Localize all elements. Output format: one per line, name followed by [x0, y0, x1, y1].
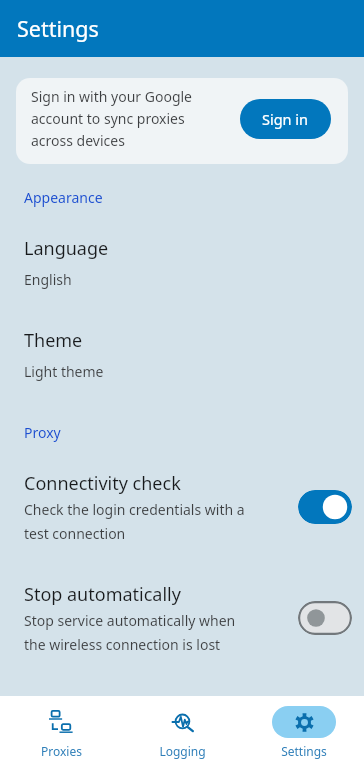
staticText: Stop automatically — [24, 582, 181, 607]
staticText: Settings — [17, 14, 99, 43]
staticText: Appearance — [24, 188, 103, 207]
staticText: Proxy — [24, 423, 61, 442]
button[interactable]: Stop automatically — [0, 563, 364, 674]
staticText: Light theme — [24, 362, 104, 381]
staticText: Sign in — [262, 109, 309, 129]
staticText: Sign in with your Google account to sync… — [31, 87, 199, 150]
button[interactable]: Sign in — [240, 99, 331, 139]
button[interactable]: Connectivity check — [0, 452, 364, 563]
staticText: Stop service automatically when the wire… — [24, 611, 246, 654]
button[interactable]: Proxies — [0, 696, 122, 768]
button[interactable]: Enabled — [298, 490, 352, 524]
staticText: English — [24, 270, 72, 289]
staticText: Theme — [24, 328, 83, 353]
button[interactable]: Theme — [0, 309, 364, 401]
staticText: Language — [24, 236, 109, 261]
button[interactable]: Logging — [122, 696, 243, 768]
button[interactable]: Disabled — [298, 601, 352, 635]
staticText: Connectivity check — [24, 471, 181, 496]
staticText: Settings — [281, 743, 327, 759]
button[interactable]: Language — [0, 217, 364, 309]
button[interactable]: Settings — [243, 696, 364, 768]
staticText: Proxies — [41, 743, 82, 759]
staticText: Check the login credentials with a test … — [24, 500, 246, 543]
staticText: Logging — [159, 743, 206, 759]
